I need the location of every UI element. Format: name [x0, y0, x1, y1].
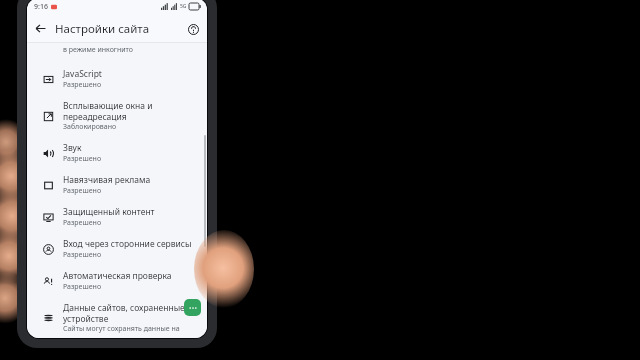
staticText: Разрешено	[63, 80, 102, 90]
staticText: Разрешено	[63, 154, 102, 164]
staticText: Всплывающие окна и переадресация	[63, 100, 153, 122]
staticText: Защищенный контент	[63, 206, 155, 218]
button[interactable]: Назад	[30, 18, 51, 39]
staticText: Разрешено	[63, 186, 102, 196]
staticText: Настройки сайта	[55, 21, 150, 37]
staticText: Разрешено	[63, 250, 102, 260]
button[interactable]: Автоматическая проверка	[27, 265, 207, 297]
staticText: JavaScript	[63, 68, 102, 80]
button[interactable]: Вход через сторонние сервисы	[27, 233, 207, 265]
button[interactable]: Меню	[184, 299, 201, 316]
button[interactable]: Всплывающие окна и переадресация	[27, 95, 207, 137]
button[interactable]: Защищенный контент	[27, 201, 207, 233]
staticText: Автоматическая проверка	[63, 270, 172, 282]
staticText: 9:16	[34, 2, 48, 12]
button[interactable]: Навязчивая реклама	[27, 169, 207, 201]
staticText: Навязчивая реклама	[63, 174, 151, 186]
button[interactable]: Звук	[27, 137, 207, 169]
staticText: 5G	[180, 3, 187, 10]
button[interactable]: Справка	[183, 19, 203, 39]
staticText: Заблокировано	[63, 122, 117, 132]
staticText: Сайты могут сохранять данные на вашем ус…	[63, 324, 180, 333]
button[interactable]: JavaScript	[27, 63, 207, 95]
button[interactable]: Данные сайтов, сохраненные на устройстве	[27, 297, 207, 338]
staticText: Разрешено	[63, 282, 102, 292]
staticText: Данные сайтов, сохраненные на устройстве	[63, 302, 197, 324]
staticText: Вход через сторонние сервисы	[63, 238, 192, 250]
staticText: Разрешено	[63, 218, 102, 228]
staticText: в режиме инкогнито	[63, 45, 133, 55]
staticText: Звук	[63, 142, 82, 154]
